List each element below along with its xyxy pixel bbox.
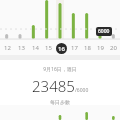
staticText: 19 [97,44,104,52]
button[interactable]: 20 [107,42,120,54]
staticText: 每日步數 [50,99,70,105]
staticText: 6000 [98,28,110,35]
staticText: 16 [58,45,65,53]
staticText: 12 [4,44,11,52]
staticText: /6000 [75,87,89,94]
staticText: 17 [71,44,78,52]
button[interactable]: 9月16日，週日 [0,60,120,105]
button[interactable]: 13 [14,42,28,54]
button[interactable]: Weekly step chart [0,0,120,41]
button[interactable]: 15 [42,42,55,54]
button[interactable]: 12 [0,42,14,54]
button[interactable]: 17 [68,42,81,54]
button[interactable]: 19 [94,42,107,54]
staticText: 23485 [32,76,75,96]
staticText: 18 [84,44,91,52]
button[interactable]: 18 [81,42,94,54]
staticText: 14 [32,44,39,52]
button[interactable]: 14 [28,42,42,54]
staticText: 13 [18,44,25,52]
staticText: 15 [45,44,52,52]
staticText: 20 [110,44,117,52]
button[interactable]: 16 [55,42,68,54]
button[interactable]: Next chart [0,105,120,120]
staticText: 9月16日，週日 [43,66,77,73]
